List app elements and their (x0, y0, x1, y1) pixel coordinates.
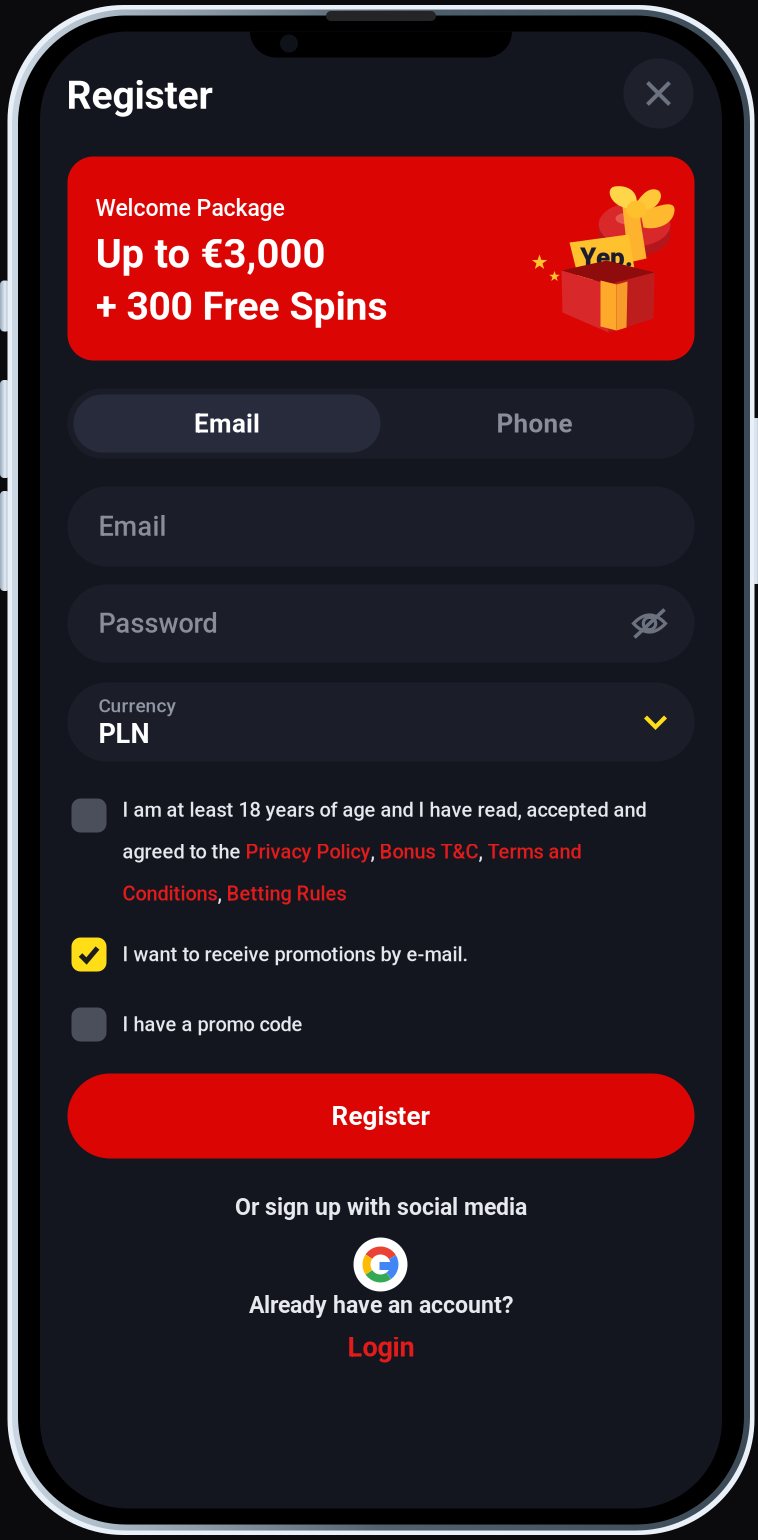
button[interactable]: Register (67, 1073, 694, 1158)
staticText: Or sign up with social media (235, 1193, 527, 1220)
button[interactable]: I want to receive promotions by e-mail. (71, 937, 682, 971)
staticText: Phone (496, 408, 572, 439)
button[interactable]: Sign up with Google (353, 1237, 407, 1291)
staticText: Login (347, 1331, 414, 1363)
staticText: I am at least 18 years of age and I have… (122, 798, 646, 905)
staticText: Register (66, 72, 212, 118)
staticText: Password (98, 608, 217, 639)
staticText: I have a promo code (122, 1013, 302, 1036)
button[interactable]: Currency (67, 682, 694, 761)
staticText: Yep. (580, 242, 633, 273)
button[interactable]: I am at least 18 years of age and I have… (71, 798, 682, 905)
staticText: Already have an account? (249, 1291, 513, 1318)
button[interactable]: Login (39, 1331, 722, 1363)
staticText: Up to €3,000 (95, 230, 325, 277)
staticText: PLN (98, 718, 149, 749)
staticText: Email (194, 408, 260, 439)
button[interactable]: Password (67, 584, 694, 662)
staticText: I want to receive promotions by e-mail. (122, 943, 468, 966)
button[interactable]: I have a promo code (71, 1007, 682, 1041)
staticText: + 300 Free Spins (95, 283, 387, 329)
button[interactable]: Close (623, 58, 693, 128)
button[interactable]: Phone (380, 394, 688, 452)
button[interactable]: Email (67, 486, 694, 566)
staticText: Currency (98, 694, 175, 717)
staticText: Email (98, 511, 166, 542)
button[interactable]: Email (73, 394, 380, 452)
staticText: Welcome Package (95, 194, 284, 221)
staticText: Register (331, 1101, 430, 1131)
